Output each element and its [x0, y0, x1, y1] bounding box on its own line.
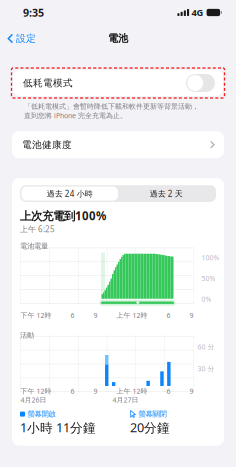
staticText: 6 [70, 386, 74, 396]
staticText: 下午 12時 [20, 386, 51, 396]
button[interactable]: 電池健康度 [12, 131, 224, 158]
staticText: 設定 [16, 32, 36, 45]
staticText: 6 [166, 310, 170, 320]
staticText: 9 [93, 386, 97, 396]
staticText: 9:35 [23, 5, 44, 20]
staticText: 上午 6:25 [20, 224, 55, 234]
button[interactable]: 過去 2 天 [118, 187, 215, 201]
button[interactable]: 過去 24 小時 [21, 187, 118, 201]
button[interactable]: 低耗電模式 [13, 70, 223, 96]
staticText: 9 [189, 386, 193, 396]
staticText: 活動 [20, 331, 34, 340]
staticText: 下午 12時 [20, 310, 51, 320]
staticText: 100% [201, 253, 219, 262]
staticText: 9 [189, 310, 193, 320]
staticText: 螢幕關閉 [138, 409, 166, 419]
staticText: 9 [93, 310, 97, 320]
staticText: 電池電量 [20, 241, 48, 251]
staticText: 上午 12時 [116, 386, 147, 396]
staticText: 60 分 [197, 342, 214, 351]
staticText: 30 分 [197, 364, 214, 373]
staticText: 50% [201, 273, 215, 283]
staticText: 螢幕開啟 [27, 409, 55, 419]
staticText: 過去 2 天 [150, 188, 183, 199]
staticText: 上次充電到100% [20, 208, 106, 224]
staticText: 「低耗電模式」會暫時降低下載和軟件更新等背景活動， 直到您將 iPhone 完全… [24, 102, 199, 120]
staticText: 6 [166, 386, 170, 396]
staticText: 4月26日 [20, 395, 46, 404]
staticText: 20分鐘 [130, 419, 170, 436]
staticText: 4G [192, 6, 204, 19]
staticText: 低耗電模式 [23, 77, 73, 89]
button[interactable]: 設定 [2, 27, 41, 49]
staticText: 電池 [108, 32, 128, 45]
staticText: 6 [70, 310, 74, 320]
staticText: 過去 24 小時 [47, 188, 93, 199]
staticText: 4月27日 [112, 395, 138, 404]
staticText: 上午 12時 [116, 310, 147, 320]
staticText: 1小時 11分鐘 [20, 419, 96, 436]
staticText: 0% [201, 294, 211, 304]
staticText: 電池健康度 [22, 139, 72, 151]
